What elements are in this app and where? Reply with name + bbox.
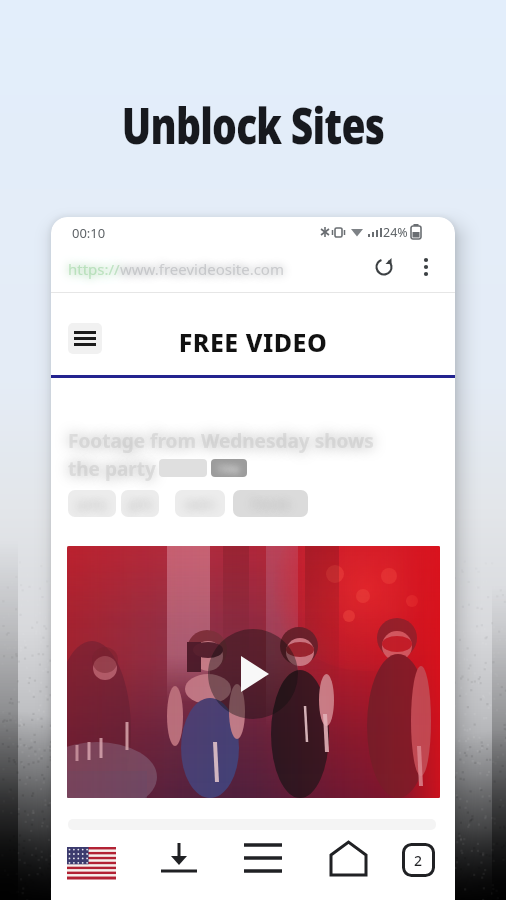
staticText: the party — [68, 456, 156, 482]
button[interactable] — [327, 839, 370, 879]
staticText: 2 — [414, 851, 423, 870]
staticText: https:// — [68, 259, 120, 279]
button[interactable]: https:// — [68, 259, 284, 279]
staticText: party — [77, 496, 107, 512]
button[interactable]: 2 — [402, 843, 435, 877]
button[interactable] — [67, 546, 440, 798]
staticText: swim — [185, 496, 215, 512]
button[interactable] — [415, 256, 437, 278]
staticText: FREE VIDEO — [51, 325, 455, 359]
button[interactable]: friends — [233, 490, 308, 517]
button[interactable] — [373, 256, 395, 278]
button[interactable]: swim — [175, 490, 225, 517]
button[interactable] — [159, 839, 199, 879]
button[interactable] — [208, 629, 298, 719]
button[interactable]: girls — [121, 490, 159, 517]
button[interactable] — [243, 841, 283, 877]
staticText: www.freevideosite.com — [120, 259, 284, 279]
staticText: Footage from Wednesday shows — [68, 428, 374, 454]
button[interactable] — [67, 847, 116, 879]
staticText: Unblock Sites — [56, 91, 450, 159]
staticText: 00:10 — [72, 224, 106, 242]
button[interactable]: party — [68, 490, 116, 517]
staticText: 24% — [383, 224, 408, 241]
button[interactable] — [68, 323, 102, 354]
staticText: girls — [128, 496, 153, 512]
staticText: 720p — [218, 462, 240, 474]
